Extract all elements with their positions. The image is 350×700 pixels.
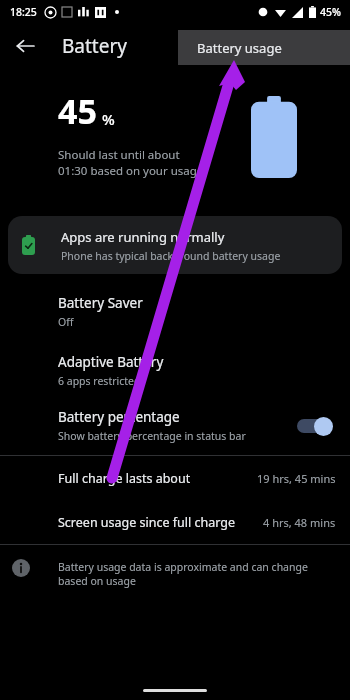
staticText: 4 hrs, 48 mins: [263, 515, 336, 530]
staticText: Apps are running normally: [61, 228, 225, 246]
button[interactable]: Full charge lasts about: [0, 456, 350, 500]
button[interactable]: Adaptive Battery: [0, 351, 350, 390]
button[interactable]: Battery Saver: [0, 292, 350, 331]
staticText: Battery percentage: [58, 408, 180, 426]
staticText: Should last until about 01:30 based on y…: [58, 147, 204, 178]
staticText: Battery usage: [197, 39, 282, 57]
staticText: Show battery percentage in status bar: [58, 429, 246, 443]
staticText: Phone has typical background battery usa…: [61, 249, 281, 263]
button[interactable]: Back: [6, 27, 44, 65]
staticText: Battery usage data is approximate and ca…: [58, 560, 326, 588]
staticText: Battery: [62, 33, 127, 59]
button[interactable]: Apps are running normally: [8, 216, 342, 274]
button[interactable]: Battery percentage: [0, 408, 350, 443]
staticText: 18:25: [10, 5, 37, 19]
staticText: 19 hrs, 45 mins: [257, 471, 336, 486]
staticText: 45%: [320, 5, 341, 19]
staticText: Adaptive Battery: [58, 353, 164, 371]
staticText: %: [102, 109, 115, 129]
staticText: 45: [58, 88, 97, 134]
staticText: 6 apps restricted: [58, 374, 141, 388]
staticText: Battery Saver: [58, 294, 143, 312]
staticText: Off: [58, 315, 74, 329]
staticText: Screen usage since full charge: [58, 514, 236, 531]
button[interactable]: Battery usage: [178, 30, 350, 65]
button[interactable]: Screen usage since full charge: [0, 500, 350, 544]
staticText: Full charge lasts about: [58, 470, 191, 487]
